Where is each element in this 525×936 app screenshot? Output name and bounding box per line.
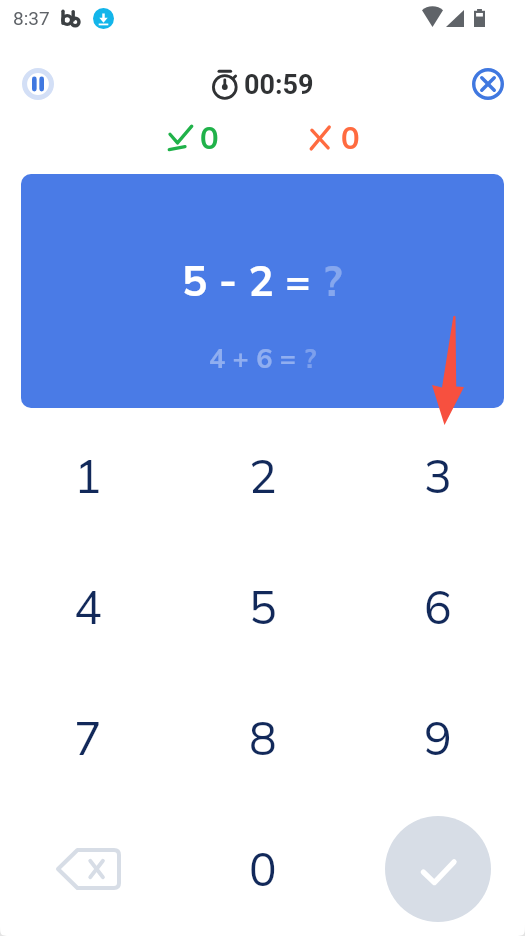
staticText: 8:37: [13, 7, 50, 29]
staticText: 9: [424, 709, 452, 767]
staticText: 3: [424, 447, 452, 505]
button[interactable]: 4: [0, 541, 175, 672]
button[interactable]: Close: [472, 68, 504, 100]
button[interactable]: 0: [175, 803, 350, 934]
staticText: 8: [249, 709, 277, 767]
button[interactable]: 9: [350, 672, 525, 803]
button[interactable]: 2: [175, 410, 350, 541]
button[interactable]: 1: [0, 410, 175, 541]
staticText: 0: [249, 840, 277, 898]
button[interactable]: 8: [175, 672, 350, 803]
button[interactable]: Submit answer: [385, 816, 491, 922]
button[interactable]: 5: [175, 541, 350, 672]
staticText: 2: [249, 447, 277, 505]
staticText: ?: [304, 341, 317, 375]
staticText: 6: [424, 578, 452, 636]
staticText: 00:59: [244, 69, 314, 101]
staticText: 1: [74, 447, 102, 505]
staticText: ?: [323, 254, 343, 307]
button[interactable]: Backspace: [0, 803, 175, 934]
button[interactable]: 7: [0, 672, 175, 803]
staticText: 5: [249, 578, 277, 636]
button[interactable]: 6: [350, 541, 525, 672]
button[interactable]: Pause: [22, 68, 54, 100]
staticText: 0: [341, 118, 360, 157]
button[interactable]: 3: [350, 410, 525, 541]
staticText: 4: [74, 578, 102, 636]
staticText: 0: [200, 118, 219, 157]
staticText: 7: [74, 709, 102, 767]
staticText: 5 - 2 =: [182, 254, 323, 307]
staticText: 4 + 6 =: [209, 341, 304, 375]
